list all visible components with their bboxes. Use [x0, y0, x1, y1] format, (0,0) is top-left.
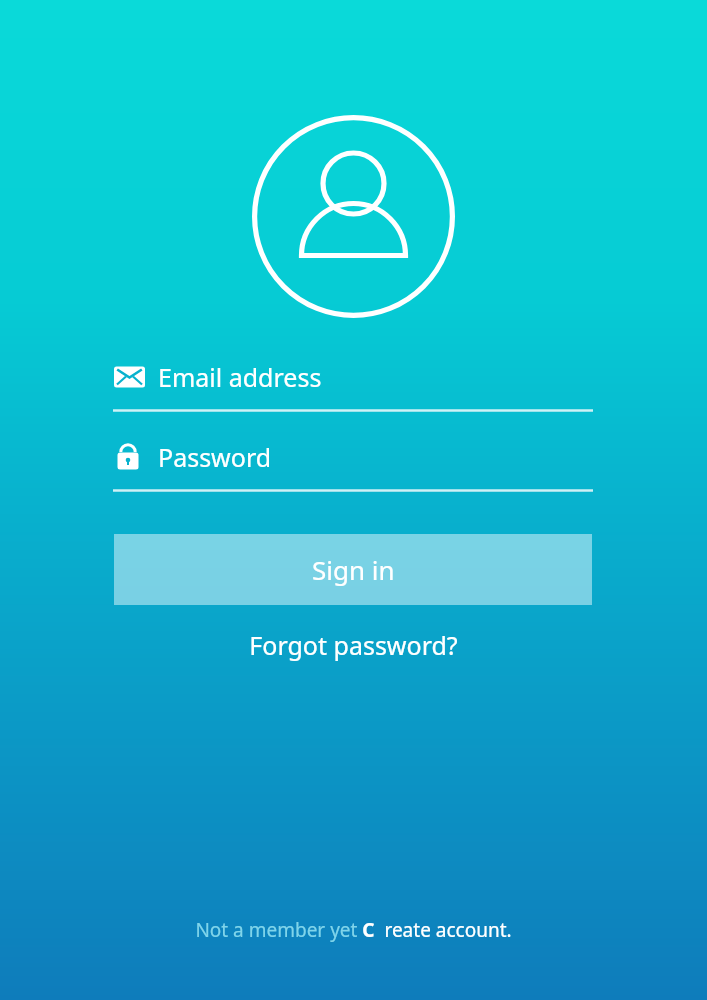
- button[interactable]: Not a member yet C reate account.: [195, 917, 512, 943]
- button[interactable]: Forgot password?: [249, 628, 458, 662]
- staticText: Email address: [158, 360, 322, 394]
- button[interactable]: Password: [113, 440, 593, 492]
- staticText: Not a member yet C reate account.: [195, 917, 512, 943]
- staticText: Forgot password?: [249, 628, 458, 662]
- staticText: Sign in: [312, 552, 395, 587]
- button[interactable]: Email address: [113, 360, 593, 412]
- button[interactable]: Sign in: [114, 534, 592, 605]
- staticText: Password: [158, 440, 272, 474]
